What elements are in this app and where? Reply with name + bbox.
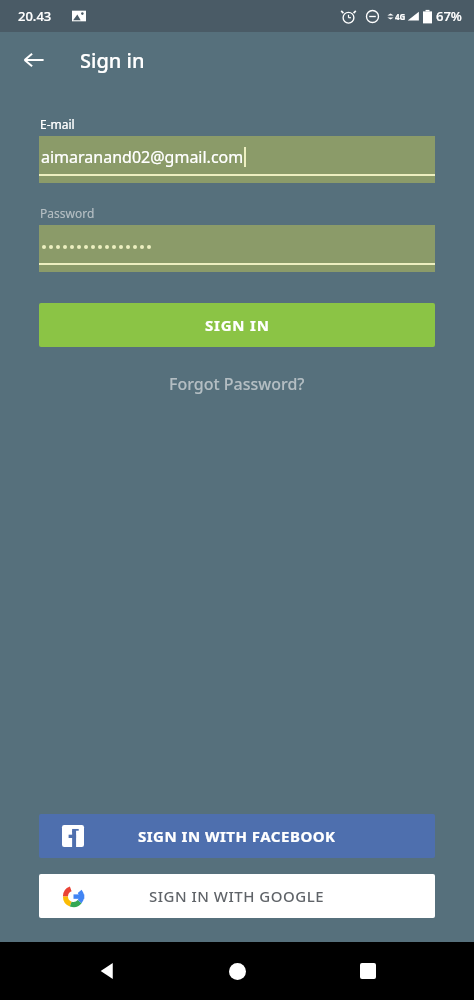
- staticText: E-mail: [40, 116, 75, 132]
- button[interactable]: [39, 225, 435, 272]
- staticText: 20.43: [18, 7, 52, 25]
- button[interactable]: SIGN IN WITH GOOGLE: [39, 874, 435, 918]
- staticText: aimaranand02@gmail.com: [41, 146, 244, 168]
- button[interactable]: SIGN IN WITH FACEBOOK: [39, 814, 435, 858]
- button[interactable]: aimaranand02@gmail.com: [39, 136, 435, 183]
- button[interactable]: Back: [10, 36, 58, 84]
- button[interactable]: Forgot Password?: [161, 369, 313, 399]
- staticText: 4G: [395, 11, 406, 22]
- staticText: Forgot Password?: [169, 373, 305, 395]
- button[interactable]: SIGN IN: [39, 303, 435, 347]
- button[interactable]: Home: [213, 947, 261, 995]
- button[interactable]: Recent apps: [344, 947, 392, 995]
- staticText: Sign in: [80, 47, 145, 74]
- staticText: SIGN IN: [205, 315, 270, 335]
- button[interactable]: Back: [83, 947, 131, 995]
- staticText: Password: [40, 205, 95, 221]
- staticText: SIGN IN WITH GOOGLE: [149, 886, 325, 906]
- staticText: 67%: [436, 7, 462, 25]
- staticText: SIGN IN WITH FACEBOOK: [138, 826, 336, 846]
